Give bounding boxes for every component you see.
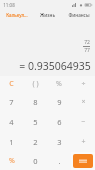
- staticText: 77: [84, 47, 90, 54]
- staticText: Финансы: [68, 12, 90, 18]
- staticText: 8: [33, 97, 38, 107]
- staticText: Жизнь: [40, 12, 55, 18]
- staticText: +: [81, 137, 86, 147]
- staticText: = 0.935064935: [19, 59, 91, 73]
- staticText: −: [81, 117, 86, 127]
- button[interactable]: Subtract: [71, 112, 95, 132]
- button[interactable]: Equals: [73, 154, 93, 168]
- button[interactable]: Percent: [0, 152, 23, 170]
- button[interactable]: Жизнь: [33, 9, 62, 20]
- button[interactable]: Multiply: [71, 92, 95, 112]
- button[interactable]: 9: [47, 92, 71, 112]
- button[interactable]: 6: [47, 112, 71, 132]
- button[interactable]: Калькул…: [2, 9, 31, 20]
- staticText: 4: [9, 117, 14, 127]
- button[interactable]: 1: [0, 132, 23, 152]
- button[interactable]: Percent: [47, 76, 71, 92]
- staticText: .: [58, 156, 61, 166]
- button[interactable]: 3: [47, 132, 71, 152]
- staticText: 3: [57, 137, 62, 147]
- staticText: 2: [33, 137, 38, 147]
- button[interactable]: Divide: [71, 76, 95, 92]
- staticText: ×: [81, 97, 86, 107]
- staticText: ( ): [32, 79, 39, 89]
- staticText: 11:08: [3, 2, 15, 8]
- staticText: C: [9, 79, 14, 89]
- button[interactable]: 0: [23, 152, 47, 170]
- button[interactable]: Финансы: [64, 9, 93, 20]
- button[interactable]: 2: [23, 132, 47, 152]
- button[interactable]: 5: [23, 112, 47, 132]
- staticText: 0: [33, 156, 38, 166]
- staticText: 5: [33, 117, 38, 127]
- button[interactable]: Parentheses: [23, 76, 47, 92]
- button[interactable]: 4: [0, 112, 23, 132]
- staticText: 6: [57, 117, 62, 127]
- staticText: 7: [9, 97, 14, 107]
- staticText: %: [9, 156, 15, 166]
- staticText: %: [56, 79, 62, 89]
- staticText: Калькул…: [6, 12, 28, 18]
- staticText: ÷: [81, 79, 86, 89]
- button[interactable]: 7: [0, 92, 23, 112]
- button[interactable]: Decimal point: [47, 152, 71, 170]
- staticText: 9: [57, 97, 62, 107]
- staticText: 1: [9, 137, 14, 147]
- staticText: 72: [84, 39, 90, 46]
- button[interactable]: 8: [23, 92, 47, 112]
- button[interactable]: Clear: [0, 76, 23, 92]
- button[interactable]: Add: [71, 132, 95, 152]
